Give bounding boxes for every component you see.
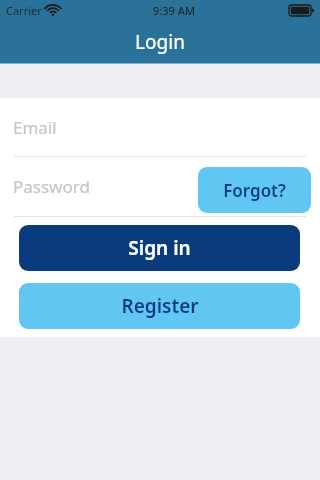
button[interactable]: Forgot? (198, 167, 311, 213)
button[interactable]: Email (0, 98, 320, 156)
button[interactable]: Password (0, 157, 320, 216)
other: Battery full (289, 5, 314, 16)
staticText: Forgot? (223, 179, 286, 202)
staticText: Carrier (6, 3, 42, 18)
staticText: 9:39 AM (153, 3, 196, 18)
staticText: Email (13, 116, 57, 139)
button[interactable]: Register (19, 283, 300, 329)
staticText: Sign in (128, 235, 191, 261)
button[interactable]: Sign in (19, 225, 300, 271)
other: Wi-Fi signal (46, 5, 60, 16)
staticText: Register (121, 293, 199, 319)
staticText: Password (13, 175, 90, 198)
staticText: Login (135, 29, 185, 55)
